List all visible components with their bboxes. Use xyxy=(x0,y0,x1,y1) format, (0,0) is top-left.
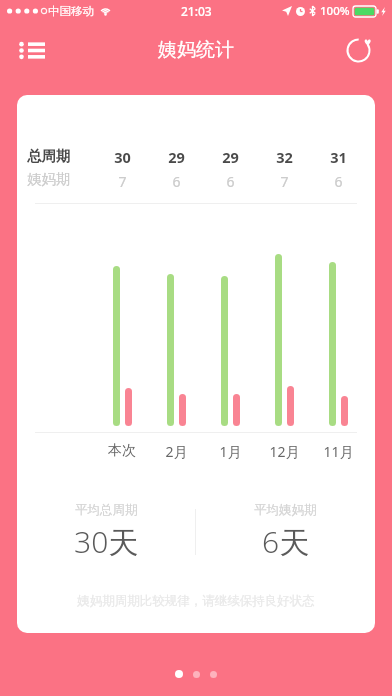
button[interactable]: Refresh xyxy=(336,28,380,72)
staticText: 7 xyxy=(118,172,127,191)
staticText: 12月 xyxy=(269,442,300,461)
staticText: 总周期 xyxy=(27,147,71,165)
staticText: 2月 xyxy=(165,442,188,461)
staticText: 6 xyxy=(172,172,181,191)
staticText: 姨妈期周期比较规律，请继续保持良好状态 xyxy=(17,593,375,609)
staticText: 姨妈统计 xyxy=(158,38,234,62)
staticText: 11月 xyxy=(323,442,354,461)
staticText: 6 xyxy=(226,172,235,191)
staticText: 100% xyxy=(320,3,350,19)
staticText: 7 xyxy=(280,172,289,191)
staticText: 6 xyxy=(334,172,343,191)
staticText: 30天 xyxy=(74,521,139,562)
button[interactable]: Menu xyxy=(10,28,54,72)
staticText: 中国移动 xyxy=(48,4,94,18)
button[interactable]: 平均总周期 xyxy=(17,502,195,562)
staticText: 6天 xyxy=(262,521,310,562)
staticText: 29 xyxy=(168,147,185,167)
staticText: 本次 xyxy=(108,442,136,460)
staticText: 30 xyxy=(114,147,131,167)
staticText: 平均总周期 xyxy=(75,502,138,518)
staticText: 29 xyxy=(222,147,239,167)
staticText: 平均姨妈期 xyxy=(254,502,317,518)
button[interactable]: 平均姨妈期 xyxy=(196,502,375,562)
staticText: 21:03 xyxy=(181,3,212,19)
staticText: 1月 xyxy=(219,442,242,461)
staticText: 32 xyxy=(276,147,293,167)
staticText: 31 xyxy=(330,147,347,167)
staticText: 姨妈期 xyxy=(27,170,71,188)
